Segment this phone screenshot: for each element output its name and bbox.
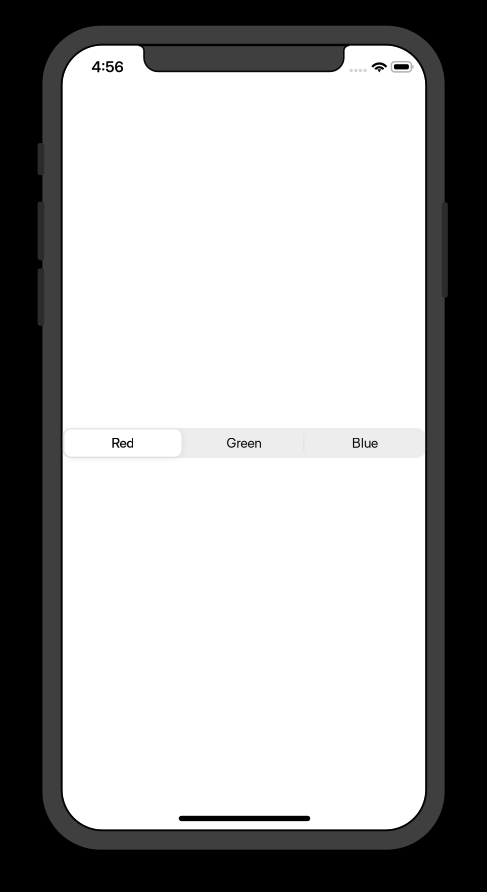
staticText: Green	[226, 435, 261, 451]
button[interactable]: Green	[183, 428, 304, 458]
button[interactable]: Blue	[304, 428, 425, 458]
staticText: Red	[111, 435, 134, 451]
staticText: 4:56	[91, 58, 123, 76]
staticText: Blue	[352, 435, 378, 451]
button[interactable]: Red	[62, 428, 183, 458]
